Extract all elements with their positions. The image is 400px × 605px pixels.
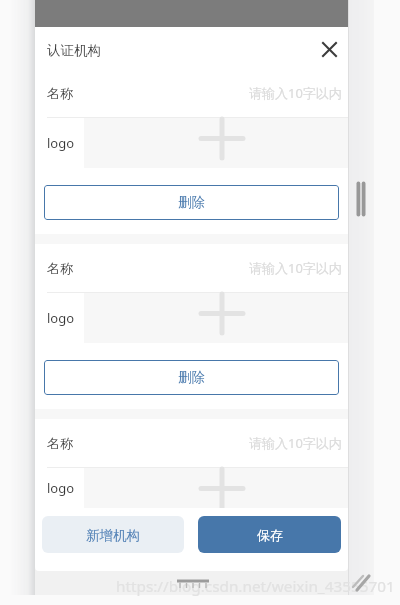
staticText: 保存 [257, 527, 283, 543]
button[interactable]: Upload logo [84, 293, 348, 343]
button[interactable]: Close [315, 35, 343, 63]
staticText: logo [47, 479, 75, 497]
button[interactable]: 名称 [35, 244, 348, 293]
staticText: logo [47, 134, 75, 152]
button[interactable]: Upload logo [84, 118, 348, 168]
button[interactable]: 新增机构 [42, 516, 184, 553]
staticText: 请输入10字以内 [249, 434, 342, 452]
button[interactable]: 删除 [44, 360, 339, 395]
other: Scrollbar [353, 181, 369, 217]
button[interactable]: 删除 [44, 185, 339, 220]
button[interactable]: 名称 [35, 419, 348, 468]
button[interactable]: logo [35, 468, 348, 508]
staticText: 认证机构 [47, 42, 101, 59]
button[interactable]: Upload logo [84, 468, 348, 508]
button[interactable]: 名称 [35, 69, 348, 118]
staticText: 名称 [47, 260, 73, 276]
staticText: 请输入10字以内 [249, 84, 342, 102]
staticText: 名称 [47, 435, 73, 451]
staticText: 名称 [47, 85, 73, 101]
staticText: 请输入10字以内 [249, 259, 342, 277]
button[interactable]: logo [35, 118, 348, 168]
button[interactable]: 保存 [198, 516, 341, 553]
staticText: 新增机构 [86, 527, 140, 544]
staticText: https://blog.csdn.net/weixin_43555701 [116, 576, 395, 597]
staticText: logo [47, 309, 75, 327]
staticText: 删除 [178, 194, 205, 211]
staticText: 删除 [178, 369, 205, 386]
button[interactable]: logo [35, 293, 348, 343]
